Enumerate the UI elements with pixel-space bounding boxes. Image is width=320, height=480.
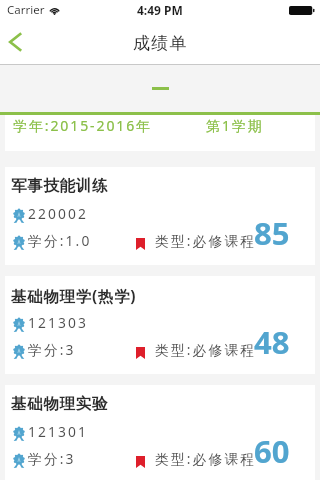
staticText: 类型:必修课程: [155, 340, 257, 359]
staticText: Carrier: [7, 2, 45, 18]
staticText: 成绩单: [133, 33, 188, 54]
staticText: 学分:1.0: [28, 231, 92, 250]
staticText: 基础物理学(热学): [11, 285, 137, 306]
staticText: 类型:必修课程: [155, 231, 257, 250]
staticText: 军事技能训练: [11, 176, 109, 196]
staticText: 85: [254, 212, 290, 254]
staticText: 121303: [28, 313, 88, 332]
button[interactable]: 学年:2015-2016年: [5, 115, 315, 151]
button[interactable]: 基础物理学(热学): [5, 276, 315, 374]
staticText: 4:49 PM: [137, 2, 183, 18]
staticText: 48: [254, 321, 290, 363]
button[interactable]: Back: [0, 20, 44, 64]
staticText: 类型:必修课程: [155, 449, 257, 468]
staticText: 60: [254, 430, 290, 472]
staticText: 121301: [28, 422, 88, 441]
staticText: 学年:2015-2016年: [13, 116, 153, 135]
button[interactable]: 基础物理实验: [5, 385, 315, 480]
staticText: 220002: [28, 204, 88, 223]
staticText: 第1学期: [206, 116, 264, 135]
staticText: 学分:3: [28, 340, 76, 359]
staticText: 学分:3: [28, 449, 76, 468]
staticText: 基础物理实验: [11, 394, 109, 414]
button[interactable]: 军事技能训练: [5, 167, 315, 265]
